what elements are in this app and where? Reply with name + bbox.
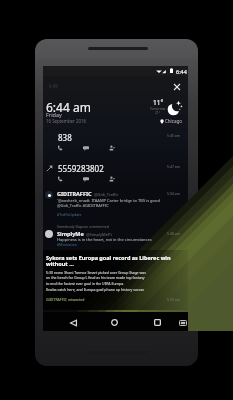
button[interactable]: Recent apps xyxy=(151,316,164,329)
staticText: 838 xyxy=(58,132,72,143)
button[interactable]: 838 xyxy=(43,130,188,161)
button[interactable]: Sykora sets Europa goal record as Libere… xyxy=(43,250,188,310)
staticText: 5:09 am xyxy=(167,297,181,302)
button[interactable]: GIDITRAFFIC xyxy=(43,188,188,220)
staticText: 5:48 am xyxy=(167,231,181,236)
button[interactable]: Screenshot xyxy=(176,316,189,329)
staticText: #TrafficUpdate xyxy=(57,212,82,217)
staticText: Happiness is in the heart, not in the ci… xyxy=(57,237,152,242)
staticText: @SimplyMePt xyxy=(86,232,112,237)
staticText: 5:45 am xyxy=(167,133,181,138)
staticText: 5559283802 xyxy=(58,163,104,174)
staticText: GIDITRAFFIC retweeted xyxy=(46,297,85,302)
staticText: Somebody Dapson commented xyxy=(57,224,109,229)
staticText: 6:45 xyxy=(49,83,58,89)
staticText: 11° xyxy=(153,98,164,107)
staticText: @Gidi_Traffic xyxy=(94,192,119,197)
staticText: SimplyMe xyxy=(57,230,84,237)
staticText: GIDITRAFFIC xyxy=(57,190,92,197)
staticText: 16 September 2016 xyxy=(46,118,87,124)
staticText: '@aosherb_nnadi: ITAAMP Carter bridge to… xyxy=(57,198,160,208)
staticText: 5:04 am xyxy=(167,191,181,196)
staticText: 6:44 xyxy=(176,68,187,75)
staticText: Friday xyxy=(46,111,62,118)
staticText: 5:30 news: Shani Tarmor. Smart picked ov… xyxy=(46,270,146,292)
staticText: Sykora sets Europa goal record as Libere… xyxy=(46,254,171,268)
button[interactable]: Close all notifications xyxy=(171,81,183,93)
staticText: 6:44 am xyxy=(46,99,91,115)
staticText: #Motivation xyxy=(57,242,77,247)
button[interactable]: Back xyxy=(67,316,80,329)
staticText: Tomorrow xyxy=(150,107,166,111)
staticText: 5:47 am xyxy=(167,164,181,169)
staticText: 21° xyxy=(155,111,161,115)
staticText: Chicago xyxy=(165,118,182,124)
button[interactable]: Somebody Dapson commented xyxy=(43,222,188,248)
button[interactable]: 5559283802 xyxy=(43,161,188,192)
button[interactable]: Home xyxy=(108,316,121,329)
